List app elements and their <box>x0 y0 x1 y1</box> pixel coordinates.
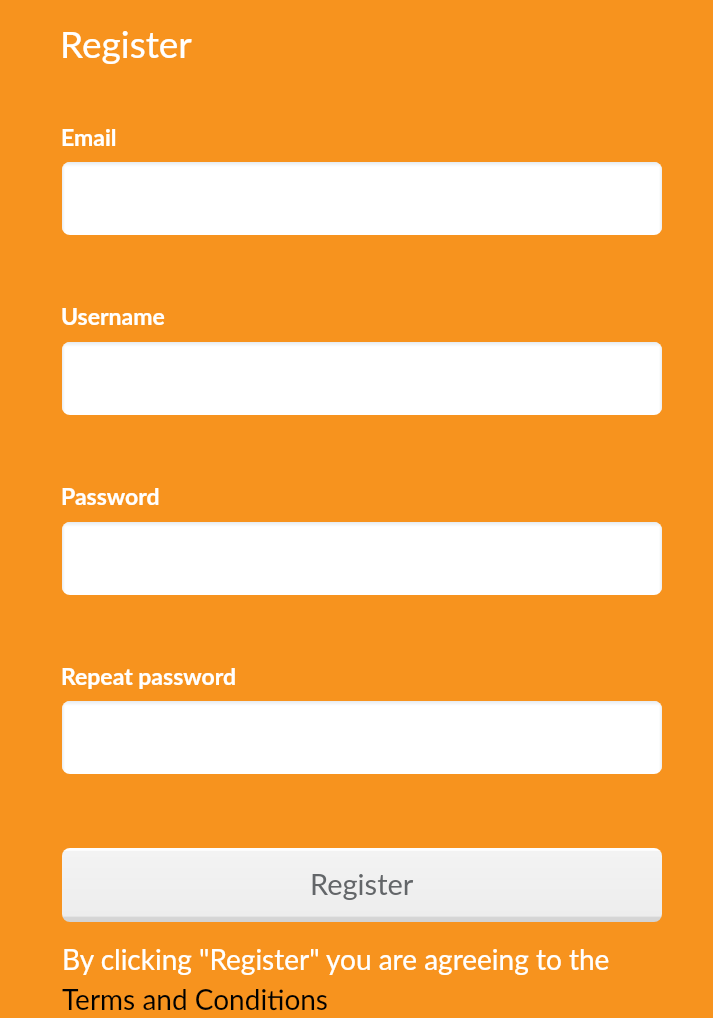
staticText: Register <box>60 20 192 66</box>
button[interactable]: Repeat password input field <box>62 701 662 774</box>
staticText: Username <box>61 300 165 330</box>
staticText: By clicking "Register" you are agreeing … <box>62 937 610 977</box>
button[interactable]: Register <box>62 848 662 922</box>
button[interactable]: Email input field <box>62 162 662 235</box>
staticText: Password <box>61 480 160 510</box>
button[interactable]: Password input field <box>62 522 662 595</box>
staticText: Register <box>310 866 414 901</box>
staticText: Repeat password <box>61 660 237 690</box>
button[interactable]: Terms and Conditions <box>62 977 328 1017</box>
button[interactable]: Username input field <box>62 342 662 415</box>
staticText: Email <box>61 121 117 151</box>
